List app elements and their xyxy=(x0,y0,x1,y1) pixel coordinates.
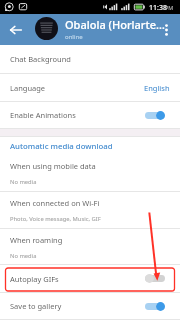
button[interactable]: When connected on Wi-Fi xyxy=(0,192,180,228)
staticText: Enable Animations xyxy=(10,110,76,120)
staticText: Language xyxy=(10,83,46,93)
button[interactable]: Save to gallery xyxy=(0,293,180,319)
staticText: Autoplay GIFs xyxy=(10,274,59,284)
button[interactable]: When using mobile data xyxy=(0,155,180,191)
staticText: online xyxy=(65,33,83,41)
button[interactable]: Profile photo xyxy=(35,17,58,40)
staticText: When connected on Wi-Fi xyxy=(10,198,100,208)
staticText: 11:38 xyxy=(149,3,167,13)
button[interactable]: Language xyxy=(0,74,180,101)
staticText: When using mobile data xyxy=(10,161,96,171)
button[interactable]: Autoplay GIFs xyxy=(0,265,180,292)
staticText: Chat Background xyxy=(10,54,71,64)
staticText: PM xyxy=(165,4,174,11)
staticText: Obalola (Horlarte… xyxy=(65,17,165,32)
button[interactable]: More options xyxy=(157,14,176,45)
button[interactable]: Chat Background xyxy=(0,45,180,73)
staticText: English xyxy=(144,83,170,93)
staticText: Automatic media download xyxy=(10,141,113,152)
button[interactable]: Enable Animations xyxy=(0,102,180,128)
button[interactable]: Back xyxy=(4,18,28,42)
staticText: Photo, Voice message, Music, GIF xyxy=(10,215,101,223)
staticText: No media xyxy=(10,178,37,186)
staticText: When roaming xyxy=(10,235,63,245)
staticText: Save to gallery xyxy=(10,301,62,311)
staticText: No media xyxy=(10,252,37,260)
button[interactable]: When roaming xyxy=(0,229,180,264)
